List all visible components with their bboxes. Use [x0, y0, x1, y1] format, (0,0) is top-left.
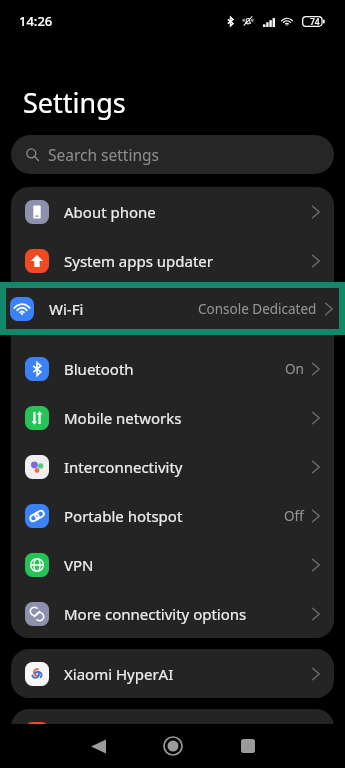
staticText: System apps updater	[64, 251, 214, 271]
staticText: Mobile networks	[64, 408, 182, 428]
staticText: Settings	[23, 84, 126, 121]
staticText: Console Dedicated	[198, 300, 317, 318]
button[interactable]: More connectivity options	[11, 589, 334, 638]
staticText: On	[285, 360, 304, 378]
staticText: Wi-Fi	[49, 299, 84, 319]
button[interactable]: System apps updater	[11, 236, 334, 285]
button[interactable]: Back	[75, 724, 121, 768]
button[interactable]: Xiaomi HyperAI	[11, 649, 334, 698]
button[interactable]: Portable hotspot	[11, 491, 334, 540]
staticText: Bluetooth	[64, 359, 134, 379]
staticText: 74	[310, 16, 320, 27]
staticText: Xiaomi HyperAI	[64, 664, 174, 684]
staticText: Display	[64, 724, 116, 744]
staticText: Off	[284, 507, 304, 525]
button[interactable]: Wi-Fi	[6, 288, 339, 329]
staticText: More connectivity options	[64, 604, 247, 624]
button[interactable]: Home	[150, 724, 196, 768]
staticText: About phone	[64, 202, 156, 222]
button[interactable]: VPN	[11, 540, 334, 589]
button[interactable]: Display	[11, 709, 334, 758]
button[interactable]: Recent apps	[225, 724, 271, 768]
button[interactable]: About phone	[11, 187, 334, 236]
button[interactable]: Mobile networks	[11, 393, 334, 442]
staticText: Search settings	[48, 144, 159, 165]
button[interactable]: Bluetooth	[11, 344, 334, 393]
staticText: 14:26	[19, 12, 53, 30]
button[interactable]: Interconnectivity	[11, 442, 334, 491]
staticText: Portable hotspot	[64, 506, 183, 526]
staticText: VPN	[64, 555, 94, 575]
button[interactable]: Search settings	[11, 135, 334, 174]
staticText: Interconnectivity	[64, 457, 183, 477]
